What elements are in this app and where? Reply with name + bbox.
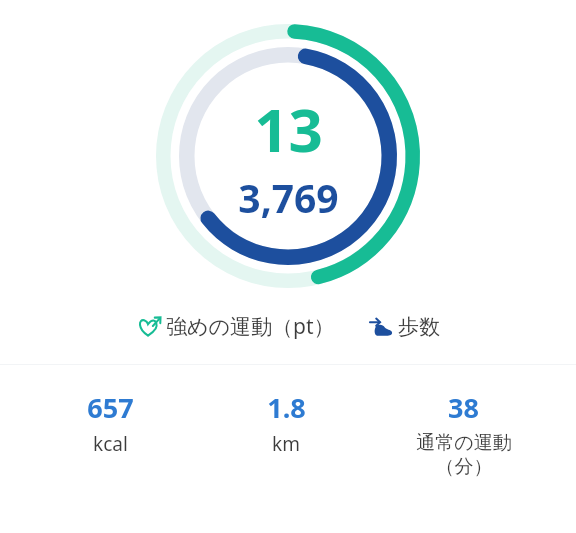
staticText: km (272, 431, 300, 457)
staticText: 38 (448, 389, 479, 426)
staticText: 3,769 (238, 171, 339, 224)
staticText: 13 (254, 88, 323, 170)
staticText: 通常の運動 （分） (416, 431, 512, 479)
button[interactable]: 1.8 (207, 389, 365, 457)
staticText: 1.8 (267, 389, 306, 426)
button[interactable]: 657 (14, 389, 207, 457)
other: 歩数 (369, 315, 393, 339)
button[interactable]: 歩数 (369, 314, 440, 340)
staticText: 強めの運動（pt） (166, 312, 335, 341)
staticText: 657 (87, 389, 134, 426)
button[interactable]: 13 (154, 22, 422, 290)
staticText: 歩数 (398, 314, 440, 340)
staticText: kcal (93, 431, 128, 457)
button[interactable]: 38 (365, 389, 562, 479)
other: 強めの運動 (137, 315, 161, 339)
button[interactable]: 強めの運動 (137, 312, 335, 341)
